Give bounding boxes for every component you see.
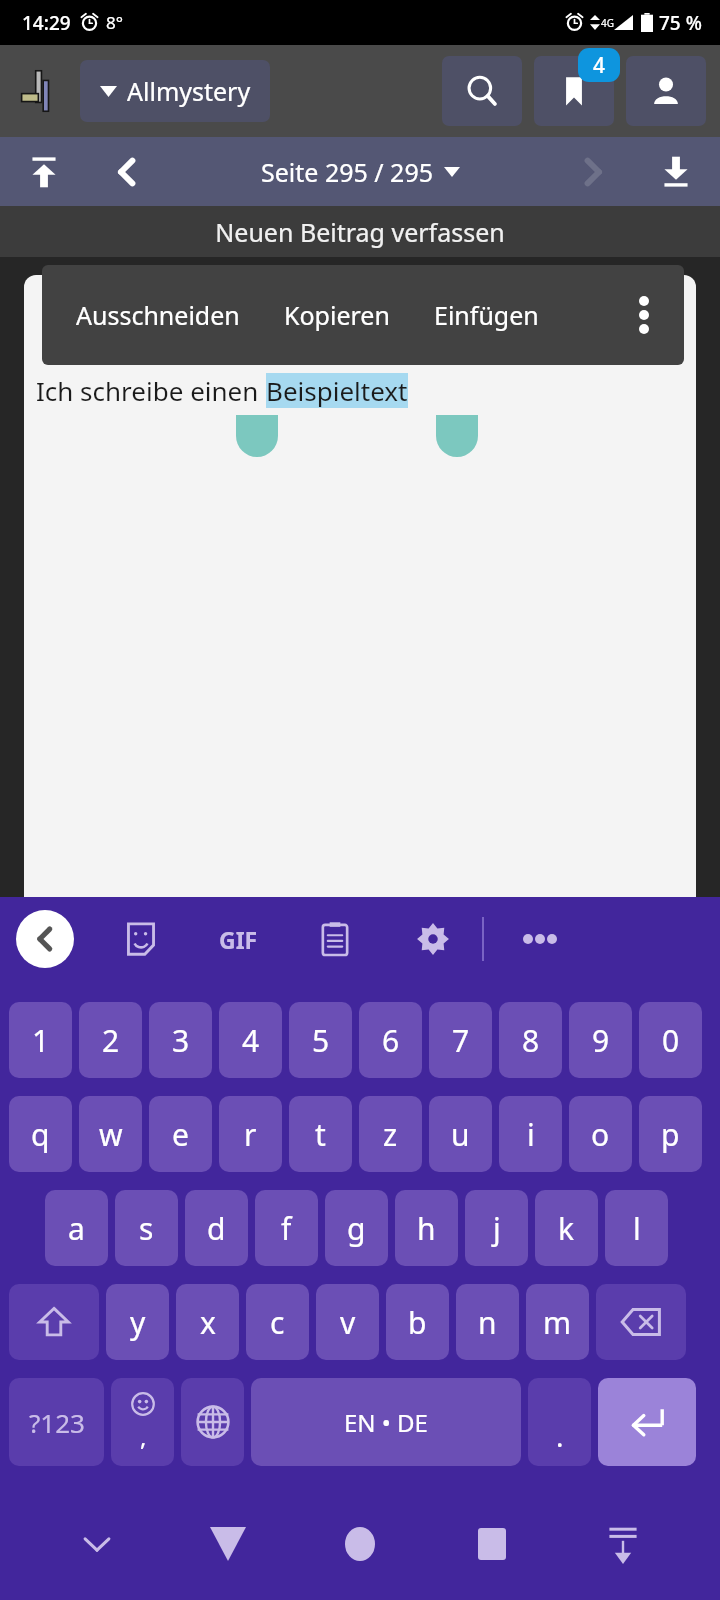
button[interactable]: Settings: [410, 916, 456, 962]
button[interactable]: c: [246, 1284, 309, 1360]
button[interactable]: p: [639, 1096, 702, 1172]
button[interactable]: More: [518, 917, 562, 961]
staticText: GIF: [219, 924, 258, 955]
staticText: s: [139, 1208, 154, 1249]
button[interactable]: Recents: [457, 1509, 527, 1579]
button[interactable]: ?123: [9, 1378, 104, 1466]
staticText: 14:29: [22, 10, 71, 36]
staticText: w: [99, 1114, 123, 1155]
button[interactable]: Search: [442, 56, 522, 126]
button[interactable]: Profile: [626, 56, 706, 126]
staticText: a: [68, 1208, 85, 1249]
button[interactable]: 5: [289, 1002, 352, 1078]
button[interactable]: f: [255, 1190, 318, 1266]
button[interactable]: 2: [79, 1002, 142, 1078]
staticText: d: [207, 1208, 226, 1249]
button[interactable]: s: [115, 1190, 178, 1266]
button[interactable]: t: [289, 1096, 352, 1172]
button[interactable]: Change language: [181, 1378, 244, 1466]
button[interactable]: n: [456, 1284, 519, 1360]
staticText: Seite 295 / 295: [261, 155, 434, 189]
button[interactable]: Emoji and comma: [111, 1378, 174, 1466]
button[interactable]: More options: [622, 280, 666, 350]
button[interactable]: Previous page: [88, 137, 166, 206]
button[interactable]: m: [526, 1284, 589, 1360]
staticText: EN • DE: [344, 1406, 428, 1439]
button[interactable]: 3: [149, 1002, 212, 1078]
staticText: .: [556, 1417, 564, 1455]
button[interactable]: GIF: [216, 917, 260, 961]
button[interactable]: Kopieren: [284, 298, 390, 332]
button[interactable]: Shift: [9, 1284, 99, 1360]
staticText: m: [543, 1302, 572, 1343]
button[interactable]: Back: [16, 910, 74, 968]
button[interactable]: Stickers: [118, 916, 164, 962]
button[interactable]: Ausschneiden: [76, 298, 240, 332]
button[interactable]: 6: [359, 1002, 422, 1078]
staticText: 2: [102, 1020, 120, 1061]
button[interactable]: Back: [193, 1509, 263, 1579]
staticText: 6: [382, 1020, 400, 1061]
button[interactable]: q: [9, 1096, 72, 1172]
button[interactable]: 0: [639, 1002, 702, 1078]
button[interactable]: d: [185, 1190, 248, 1266]
staticText: Ich schreibe einen: [36, 373, 266, 408]
button[interactable]: Clipboard: [312, 916, 358, 962]
button[interactable]: x: [176, 1284, 239, 1360]
button[interactable]: g: [325, 1190, 388, 1266]
button[interactable]: v: [316, 1284, 379, 1360]
button[interactable]: Enter: [598, 1378, 696, 1466]
button[interactable]: Backspace: [596, 1284, 686, 1360]
button[interactable]: k: [535, 1190, 598, 1266]
button[interactable]: 8: [499, 1002, 562, 1078]
staticText: 5: [312, 1020, 330, 1061]
button[interactable]: z: [359, 1096, 422, 1172]
staticText: z: [383, 1114, 398, 1155]
button[interactable]: j: [465, 1190, 528, 1266]
staticText: 75 %: [659, 10, 702, 36]
button[interactable]: Allmystery: [80, 60, 270, 122]
staticText: t: [315, 1114, 326, 1155]
button[interactable]: u: [429, 1096, 492, 1172]
staticText: o: [591, 1114, 610, 1155]
button[interactable]: 9: [569, 1002, 632, 1078]
staticText: k: [558, 1208, 575, 1249]
button[interactable]: i: [499, 1096, 562, 1172]
button[interactable]: b: [386, 1284, 449, 1360]
staticText: e: [172, 1114, 189, 1155]
staticText: 1: [32, 1020, 50, 1061]
button[interactable]: EN • DE: [251, 1378, 521, 1466]
staticText: ,: [140, 1420, 147, 1453]
button[interactable]: Seite 295 / 295: [166, 137, 554, 206]
staticText: j: [493, 1208, 501, 1249]
button[interactable]: Hide keyboard: [62, 1509, 132, 1579]
button[interactable]: Next page: [554, 137, 632, 206]
staticText: u: [451, 1114, 470, 1155]
button[interactable]: Home: [325, 1509, 395, 1579]
button[interactable]: Einfügen: [434, 298, 539, 332]
button[interactable]: Collapse: [588, 1509, 658, 1579]
staticText: 8°: [106, 11, 123, 34]
button[interactable]: Allmystery logo: [14, 64, 68, 118]
staticText: ?123: [29, 1405, 85, 1440]
button[interactable]: w: [79, 1096, 142, 1172]
button[interactable]: First page: [0, 137, 88, 206]
button[interactable]: Neuen Beitrag verfassen: [0, 206, 720, 257]
button[interactable]: l: [605, 1190, 668, 1266]
button[interactable]: Last page: [632, 137, 720, 206]
button[interactable]: y: [106, 1284, 169, 1360]
button[interactable]: r: [219, 1096, 282, 1172]
staticText: p: [661, 1114, 680, 1155]
button[interactable]: e: [149, 1096, 212, 1172]
staticText: i: [527, 1114, 535, 1155]
button[interactable]: .: [528, 1378, 591, 1466]
button[interactable]: a: [45, 1190, 108, 1266]
button[interactable]: 1: [9, 1002, 72, 1078]
staticText: r: [244, 1114, 257, 1155]
button[interactable]: o: [569, 1096, 632, 1172]
button[interactable]: h: [395, 1190, 458, 1266]
staticText: Allmystery: [127, 74, 251, 108]
button[interactable]: 7: [429, 1002, 492, 1078]
button[interactable]: 4: [219, 1002, 282, 1078]
button[interactable]: Bookmarks: [534, 56, 614, 126]
